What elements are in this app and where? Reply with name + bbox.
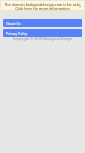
- staticText: Privacy Policy: [6, 31, 28, 36]
- staticText: The domain biologicaldesign.com is for s…: [4, 2, 81, 10]
- button[interactable]: About Us: [3, 19, 82, 27]
- staticText: ×: [79, 4, 82, 8]
- staticText: About Us: [6, 21, 21, 26]
- button[interactable]: Privacy Policy: [3, 29, 82, 37]
- staticText: Copyright © 2018 Biological Design: [3, 36, 82, 41]
- button[interactable]: Close banner: [78, 4, 82, 8]
- button[interactable]: The domain biologicaldesign.com is for s…: [1, 1, 84, 10]
